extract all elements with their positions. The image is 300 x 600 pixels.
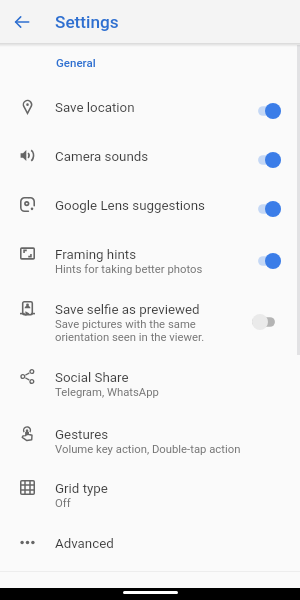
button[interactable]: Gestures — [0, 413, 300, 468]
button[interactable]: Save location — [0, 86, 300, 136]
staticText: Google Lens suggestions — [55, 198, 205, 214]
button[interactable]: Save selfie as previewed — [0, 288, 300, 356]
button[interactable]: Framing hints — [0, 233, 300, 289]
button[interactable]: Grid type — [0, 467, 300, 521]
staticText: Save location — [55, 100, 135, 116]
button[interactable]: On — [252, 201, 281, 217]
staticText: Volume key action, Double-tap action — [55, 443, 241, 456]
staticText: Advanced — [55, 536, 114, 552]
staticText: General — [56, 56, 96, 69]
staticText: Telegram, WhatsApp — [55, 386, 159, 399]
staticText: Save selfie as previewed — [55, 302, 200, 318]
button[interactable]: Advanced — [0, 522, 300, 572]
staticText: orientation seen in the viewer. — [55, 331, 205, 344]
staticText: Hints for taking better photos — [55, 263, 203, 276]
button[interactable]: Off — [252, 314, 281, 330]
button[interactable]: Navigate up — [0, 0, 43, 43]
staticText: Save pictures with the same — [55, 318, 196, 331]
staticText: Settings — [55, 12, 119, 32]
button[interactable]: Google Lens suggestions — [0, 184, 300, 233]
staticText: Social Share — [55, 370, 129, 386]
button[interactable]: On — [252, 103, 281, 119]
button[interactable]: On — [252, 152, 281, 168]
button[interactable]: Camera sounds — [0, 135, 300, 184]
button[interactable]: On — [252, 253, 281, 269]
staticText: Camera sounds — [55, 149, 149, 165]
button[interactable]: Social Share — [0, 356, 300, 412]
staticText: Grid type — [55, 481, 108, 497]
staticText: Off — [55, 497, 71, 510]
staticText: Framing hints — [55, 247, 137, 263]
staticText: Gestures — [55, 427, 109, 443]
